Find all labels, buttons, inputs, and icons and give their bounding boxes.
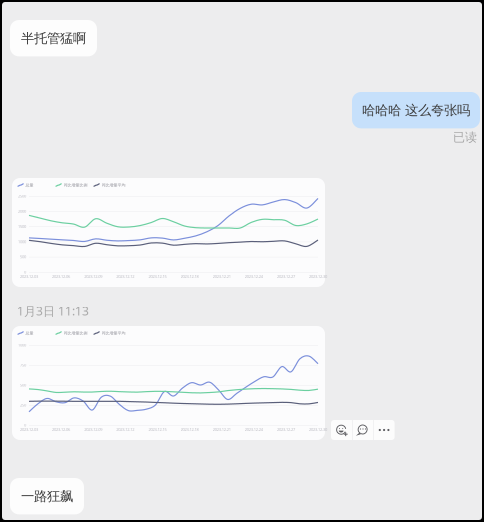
staticText: 2023-12-30: [309, 427, 327, 432]
staticText: 2023-12-12: [116, 274, 134, 279]
button[interactable]: More options: [374, 420, 395, 440]
staticText: 1000: [18, 342, 26, 348]
staticText: 2000: [18, 208, 26, 214]
staticText: 0: [24, 422, 26, 428]
staticText: 同比增量平均: [101, 331, 125, 336]
staticText: 总量: [25, 183, 33, 188]
button[interactable]: Reply: [353, 420, 373, 440]
staticText: 2023-12-30: [309, 274, 327, 279]
staticText: 500: [20, 382, 26, 388]
staticText: 2023-12-27: [277, 274, 295, 279]
staticText: 2023-12-03: [20, 427, 38, 432]
staticText: 同比增量平均: [101, 183, 125, 188]
staticText: 1500: [18, 224, 26, 229]
staticText: 1月3日 11:13: [17, 303, 89, 319]
staticText: 哈哈哈 这么夸张吗: [362, 102, 470, 118]
staticText: 500: [20, 254, 26, 259]
staticText: 2023-12-12: [116, 427, 134, 432]
staticText: 2023-12-15: [148, 274, 166, 279]
button[interactable]: Add reaction: [331, 420, 352, 440]
staticText: 2500: [18, 193, 26, 199]
staticText: 2023-12-18: [181, 427, 199, 432]
staticText: 2023-12-15: [148, 427, 166, 432]
staticText: 250: [20, 402, 26, 408]
staticText: 同比增量比例: [63, 331, 87, 336]
staticText: 0: [24, 269, 26, 275]
button[interactable]: 半托管猛啊: [10, 20, 97, 56]
staticText: 2023-12-06: [52, 427, 70, 432]
staticText: 同比增量比例: [63, 183, 87, 188]
staticText: 已读: [453, 130, 477, 145]
staticText: 一路狂飙: [21, 488, 73, 504]
staticText: 2023-12-06: [52, 274, 70, 279]
button[interactable]: 哈哈哈 这么夸张吗: [352, 92, 480, 128]
staticText: 2023-12-18: [181, 274, 199, 279]
staticText: 2023-12-24: [245, 427, 263, 432]
staticText: 2023-12-09: [84, 427, 102, 432]
staticText: 1000: [18, 239, 26, 244]
button[interactable]: 一路狂飙: [10, 478, 84, 514]
staticText: 750: [20, 362, 26, 368]
staticText: 半托管猛啊: [21, 30, 86, 46]
staticText: 2023-12-09: [84, 274, 102, 279]
staticText: 2023-12-21: [213, 427, 231, 432]
staticText: 2023-12-24: [245, 274, 263, 279]
staticText: 2023-12-21: [213, 274, 231, 279]
staticText: 2023-12-03: [20, 274, 38, 279]
staticText: 总量: [25, 331, 33, 336]
staticText: 2023-12-27: [277, 427, 295, 432]
